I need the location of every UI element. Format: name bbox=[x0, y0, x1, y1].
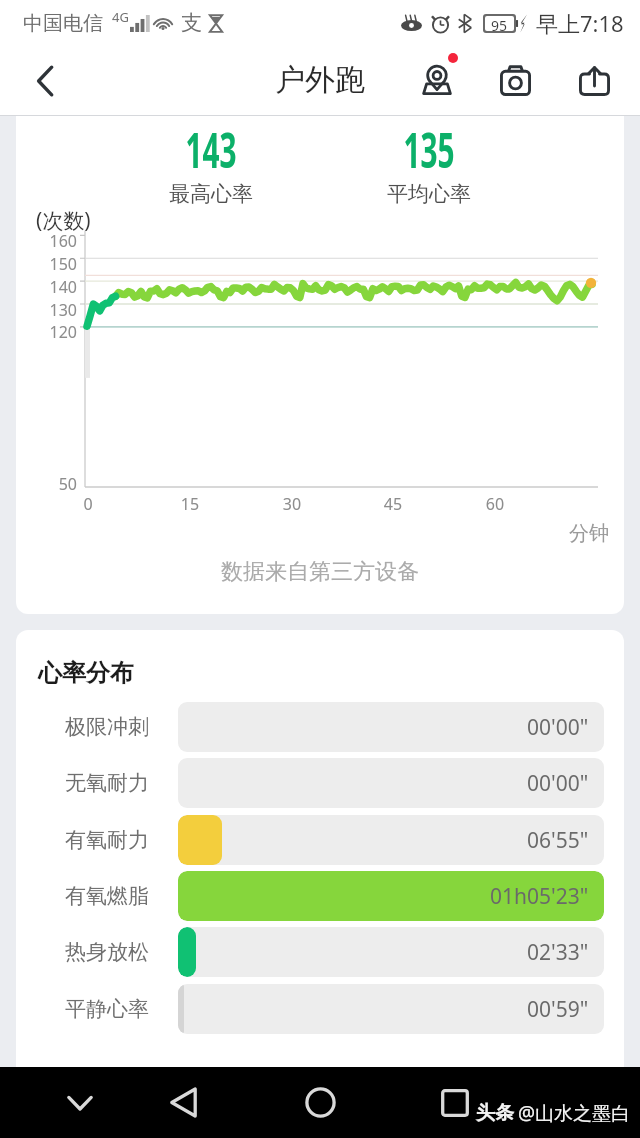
staticText: 早上7:18 bbox=[536, 8, 624, 38]
button[interactable]: 热身放松 bbox=[16, 927, 624, 977]
button[interactable]: Recents bbox=[415, 1067, 495, 1138]
staticText: 06'55" bbox=[527, 826, 589, 855]
staticText: 01h05'23" bbox=[490, 882, 589, 911]
staticText: 极限冲刺 bbox=[65, 714, 149, 740]
button[interactable]: Map bbox=[408, 45, 466, 116]
staticText: 00'59" bbox=[527, 995, 589, 1024]
staticText: (次数) bbox=[36, 206, 91, 235]
staticText: 无氧耐力 bbox=[65, 770, 149, 796]
button[interactable]: 有氧耐力 bbox=[16, 815, 624, 865]
staticText: 有氧燃脂 bbox=[65, 883, 149, 909]
staticText: 143 bbox=[174, 117, 248, 182]
button[interactable]: Home bbox=[280, 1067, 360, 1138]
staticText: 平均心率 bbox=[385, 181, 473, 207]
staticText: 45 bbox=[378, 493, 408, 515]
staticText: 00'00" bbox=[527, 713, 589, 742]
staticText: @山水之墨白 bbox=[518, 1100, 631, 1126]
staticText: 中国电信 bbox=[23, 11, 103, 36]
button[interactable]: 有氧燃脂 bbox=[16, 871, 624, 921]
staticText: 分钟 bbox=[569, 521, 609, 546]
staticText: 02'33" bbox=[527, 938, 589, 967]
staticText: 4G bbox=[112, 8, 129, 26]
staticText: 150 bbox=[38, 253, 77, 275]
button[interactable]: Share bbox=[565, 45, 623, 116]
staticText: 50 bbox=[38, 473, 77, 495]
button[interactable]: 极限冲刺 bbox=[16, 702, 624, 752]
staticText: 最高心率 bbox=[167, 181, 255, 207]
staticText: 120 bbox=[38, 321, 77, 343]
button[interactable]: Camera bbox=[486, 45, 544, 116]
staticText: 平静心率 bbox=[65, 996, 149, 1022]
button[interactable]: 无氧耐力 bbox=[16, 758, 624, 808]
staticText: 30 bbox=[277, 493, 307, 515]
staticText: 0 bbox=[73, 493, 103, 515]
staticText: 130 bbox=[38, 299, 77, 321]
staticText: 95 bbox=[491, 16, 508, 31]
staticText: 15 bbox=[175, 493, 205, 515]
staticText: 00'00" bbox=[527, 769, 589, 798]
staticText: 数据来自第三方设备 bbox=[221, 558, 419, 586]
staticText: 135 bbox=[392, 117, 466, 182]
staticText: 头条 bbox=[476, 1101, 514, 1125]
button[interactable]: Back bbox=[17, 45, 73, 116]
button[interactable]: Back bbox=[143, 1067, 223, 1138]
staticText: 户外跑 bbox=[275, 61, 365, 99]
staticText: 160 bbox=[38, 230, 77, 252]
staticText: 60 bbox=[480, 493, 510, 515]
staticText: 140 bbox=[38, 276, 77, 298]
staticText: 有氧耐力 bbox=[65, 827, 149, 853]
button[interactable]: Hide keyboard bbox=[40, 1067, 120, 1138]
button[interactable]: 平静心率 bbox=[16, 984, 624, 1034]
staticText: 支 bbox=[181, 10, 202, 36]
staticText: 热身放松 bbox=[65, 939, 149, 965]
staticText: 心率分布 bbox=[38, 658, 134, 688]
